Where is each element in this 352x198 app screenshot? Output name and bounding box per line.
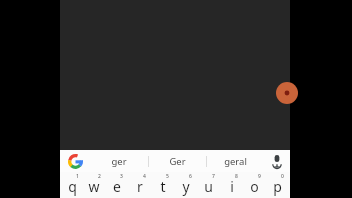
button[interactable]: Voice input [264,150,290,172]
staticText: 4 [143,173,146,180]
button[interactable]: 2 [83,172,105,198]
staticText: 7 [212,173,215,180]
staticText: r [137,177,143,196]
button[interactable]: 7 [197,172,220,198]
button[interactable]: 3 [105,172,128,198]
staticText: 6 [189,173,192,180]
button[interactable]: 6 [174,172,197,198]
staticText: 2 [98,173,101,180]
staticText: o [250,177,259,196]
staticText: i [230,177,234,196]
button[interactable]: 9 [243,172,266,198]
staticText: t [160,177,166,196]
button[interactable]: 1 [61,172,83,198]
button[interactable]: Google search [60,150,90,172]
staticText: 1 [76,173,79,180]
button[interactable]: 8 [220,172,243,198]
staticText: p [273,177,282,196]
staticText: u [204,177,213,196]
button[interactable]: 0 [266,172,289,198]
staticText: 9 [258,173,261,180]
staticText: geral [224,155,247,168]
staticText: 0 [281,173,284,180]
button[interactable]: Record [276,82,298,104]
staticText: e [113,177,121,196]
staticText: y [182,177,190,196]
staticText: 3 [120,173,123,180]
button[interactable]: 4 [128,172,151,198]
staticText: 5 [166,173,169,180]
staticText: w [88,177,100,196]
button[interactable]: 5 [151,172,174,198]
staticText: 8 [235,173,238,180]
staticText: ger [111,155,127,168]
button[interactable]: geral [207,150,264,172]
button[interactable]: ger [90,150,148,172]
staticText: Ger [169,155,186,168]
button[interactable]: Ger [149,150,206,172]
staticText: q [68,177,77,196]
